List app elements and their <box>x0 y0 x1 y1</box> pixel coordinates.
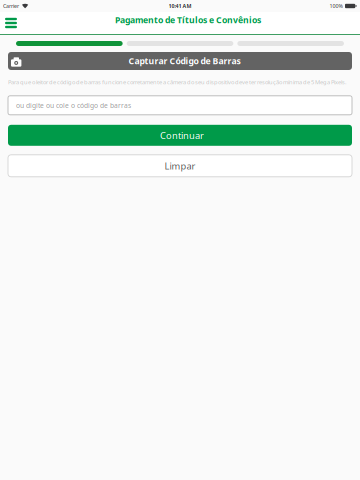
staticText: ou digite ou cole o código de barras <box>16 101 131 110</box>
button[interactable]: Continuar <box>8 125 352 146</box>
staticText: Carrier <box>3 2 19 10</box>
staticText: Limpar <box>164 159 195 172</box>
staticText: Para que o leitor de código de barras fu… <box>8 78 347 86</box>
staticText: 10:41 AM <box>168 2 191 10</box>
staticText: Continuar <box>160 129 204 142</box>
button[interactable]: Limpar <box>8 155 352 177</box>
button[interactable]: Menu <box>0 12 24 34</box>
staticText: Pagamento de Títulos e Convênios <box>115 14 261 26</box>
staticText: Capturar Código de Barras <box>128 55 240 67</box>
button[interactable]: Capturar Código de Barras <box>8 52 352 70</box>
staticText: 100% <box>329 2 342 10</box>
